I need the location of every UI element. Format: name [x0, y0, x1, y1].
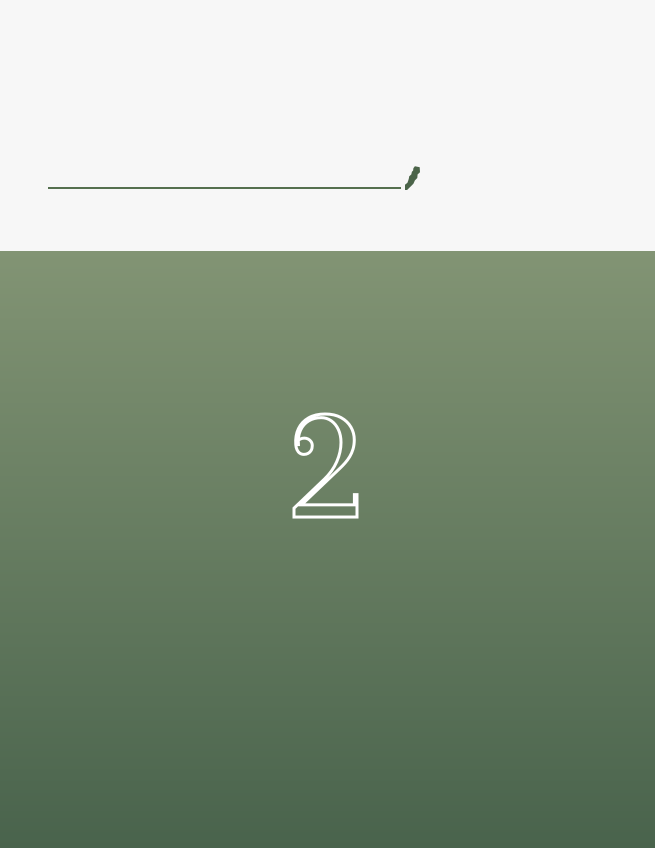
- button[interactable]: Sign: [48, 159, 428, 219]
